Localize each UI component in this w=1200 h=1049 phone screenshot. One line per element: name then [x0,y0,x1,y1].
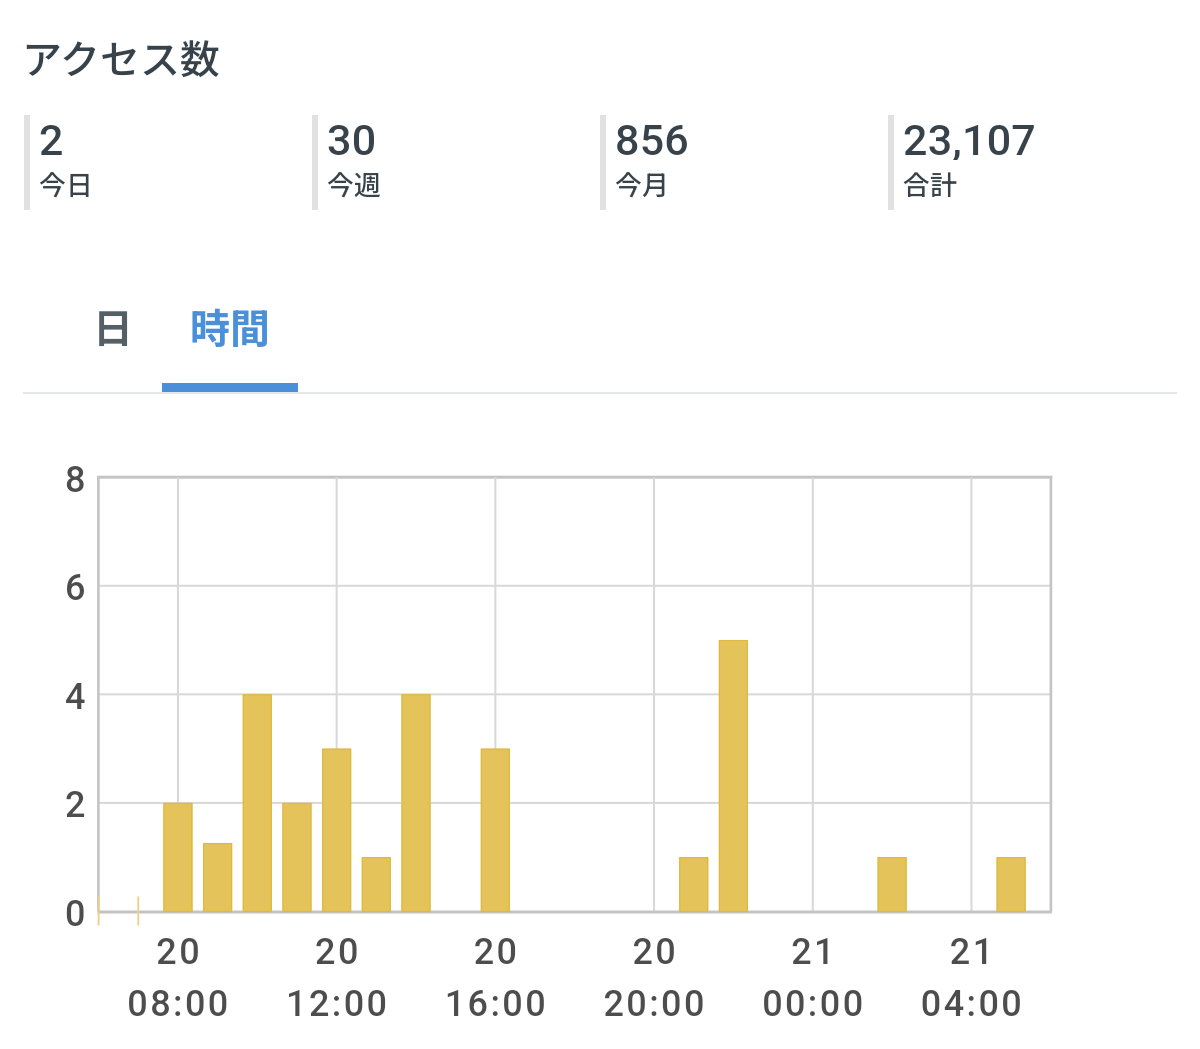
button[interactable]: 日 [64,283,162,368]
staticText: 856 [615,115,689,160]
staticText: 時間 [190,297,270,355]
staticText: 今週 [327,164,381,203]
button[interactable]: 2 [24,115,312,210]
staticText: 日 [93,297,133,355]
button[interactable]: 23,107 [888,115,1176,210]
staticText: 今月 [615,164,669,203]
button[interactable]: 30 [312,115,600,210]
button[interactable]: 856 [600,115,888,210]
staticText: 今日 [39,164,93,203]
staticText: 30 [327,115,377,160]
staticText: 23,107 [903,115,1037,160]
staticText: 2 [39,115,64,160]
button[interactable]: 時間 [162,283,297,368]
staticText: アクセス数 [22,28,220,86]
staticText: 合計 [903,164,957,203]
